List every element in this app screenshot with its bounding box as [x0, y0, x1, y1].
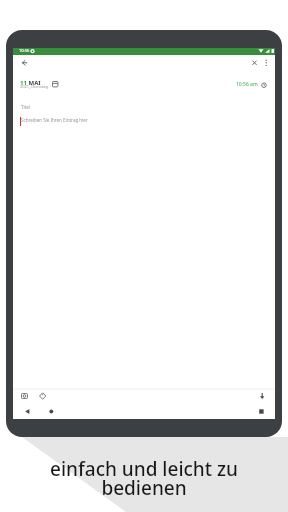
button[interactable]	[18, 57, 30, 69]
staticText: 10:56	[19, 48, 30, 53]
staticText: Titel	[21, 104, 30, 110]
staticText: bedienen	[0, 475, 288, 501]
button[interactable]	[256, 406, 267, 417]
button[interactable]	[36, 391, 49, 402]
staticText: 2021, Dienstag	[20, 84, 49, 89]
button[interactable]	[256, 391, 269, 402]
button[interactable]	[46, 406, 57, 417]
button[interactable]	[22, 406, 33, 417]
button[interactable]: 10:56	[13, 48, 275, 55]
button[interactable]: 11	[20, 79, 41, 87]
staticText: Schreiben Sie Ihren Eintrag hier	[21, 117, 88, 123]
staticText: einfach und leicht zu	[0, 456, 288, 482]
button[interactable]	[18, 391, 31, 402]
staticText: 10:56 am	[236, 81, 258, 88]
button[interactable]: 10:56 am	[235, 80, 269, 89]
staticText: MAI	[27, 79, 41, 87]
button[interactable]	[261, 57, 272, 68]
staticText: 11	[20, 79, 27, 87]
button[interactable]	[250, 57, 261, 68]
